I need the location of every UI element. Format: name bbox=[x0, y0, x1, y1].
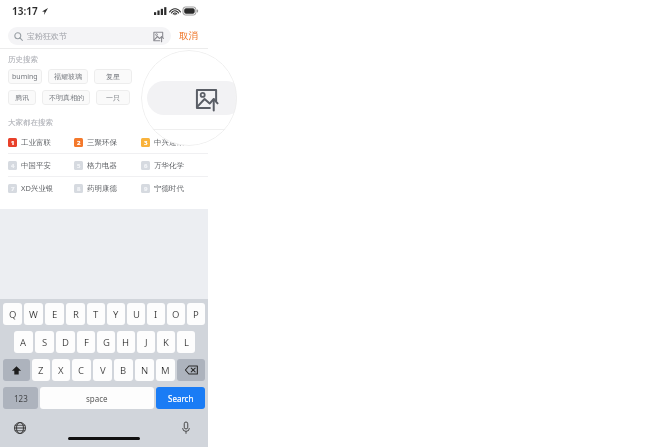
staticText: 9 bbox=[144, 185, 148, 193]
button[interactable]: 复星 bbox=[94, 69, 132, 84]
button[interactable]: W bbox=[24, 303, 43, 325]
staticText: V bbox=[100, 364, 106, 377]
staticText: 6 bbox=[144, 162, 148, 170]
staticText: 1 bbox=[11, 139, 15, 147]
staticText: 药明康德 bbox=[87, 184, 117, 193]
button[interactable]: Search bbox=[156, 387, 205, 409]
staticText: L bbox=[184, 336, 189, 349]
staticText: XD兴业银 bbox=[21, 183, 54, 193]
button[interactable]: L bbox=[177, 331, 195, 353]
button[interactable]: Backspace bbox=[177, 359, 205, 381]
staticText: M bbox=[161, 364, 170, 377]
button[interactable]: C bbox=[72, 359, 91, 381]
staticText: E bbox=[52, 308, 58, 321]
staticText: 8 bbox=[77, 185, 81, 193]
button[interactable]: Z bbox=[32, 359, 50, 381]
button[interactable]: 8 bbox=[74, 177, 141, 199]
staticText: 万华化学 bbox=[154, 161, 184, 170]
staticText: space bbox=[86, 393, 108, 404]
staticText: H bbox=[122, 336, 130, 349]
button[interactable]: G bbox=[97, 331, 115, 353]
button[interactable]: Q bbox=[3, 303, 22, 325]
button[interactable]: S bbox=[35, 331, 54, 353]
button[interactable]: U bbox=[127, 303, 145, 325]
staticText: 一只 bbox=[106, 93, 120, 102]
staticText: Search bbox=[168, 393, 194, 404]
button[interactable]: A bbox=[14, 331, 33, 353]
button[interactable]: 不明真相的 bbox=[42, 90, 90, 105]
staticText: J bbox=[145, 336, 148, 349]
staticText: B bbox=[120, 364, 127, 377]
staticText: 历史搜索 bbox=[8, 55, 38, 64]
button[interactable]: R bbox=[66, 303, 85, 325]
button[interactable]: 123 bbox=[3, 387, 38, 409]
staticText: Q bbox=[9, 308, 17, 321]
staticText: 福耀玻璃 bbox=[54, 72, 82, 81]
staticText: U bbox=[133, 308, 140, 321]
staticText: 5 bbox=[77, 162, 81, 170]
staticText: P bbox=[193, 308, 199, 321]
button[interactable]: O bbox=[167, 303, 185, 325]
button[interactable]: P bbox=[187, 303, 205, 325]
staticText: 大家都在搜索 bbox=[8, 118, 53, 127]
button[interactable]: 腾讯 bbox=[8, 90, 36, 105]
staticText: Y bbox=[113, 308, 119, 321]
button[interactable]: K bbox=[157, 331, 175, 353]
button[interactable]: F bbox=[77, 331, 95, 353]
staticText: I bbox=[154, 308, 158, 321]
button[interactable]: Y bbox=[107, 303, 125, 325]
staticText: W bbox=[29, 308, 38, 321]
button[interactable]: I bbox=[147, 303, 165, 325]
button[interactable]: Image search magnified bbox=[195, 87, 219, 111]
staticText: 格力电器 bbox=[87, 161, 117, 170]
button[interactable]: 6 bbox=[141, 154, 208, 176]
staticText: Z bbox=[38, 364, 44, 377]
staticText: R bbox=[73, 308, 79, 321]
staticText: T bbox=[93, 308, 99, 321]
button[interactable]: T bbox=[87, 303, 105, 325]
button[interactable]: Change keyboard bbox=[12, 420, 28, 436]
staticText: C bbox=[78, 364, 85, 377]
staticText: 3 bbox=[144, 139, 148, 147]
staticText: K bbox=[163, 336, 169, 349]
staticText: A bbox=[20, 336, 27, 349]
button[interactable]: E bbox=[45, 303, 64, 325]
button[interactable]: buming bbox=[8, 69, 42, 84]
button[interactable]: 福耀玻璃 bbox=[48, 69, 88, 84]
button[interactable]: X bbox=[52, 359, 70, 381]
button[interactable]: H bbox=[117, 331, 135, 353]
button[interactable]: 取消 bbox=[177, 28, 200, 44]
button[interactable]: B bbox=[114, 359, 133, 381]
staticText: 宁德时代 bbox=[154, 184, 184, 193]
staticText: 不明真相的 bbox=[49, 93, 84, 102]
button[interactable]: Image search bbox=[151, 29, 165, 43]
button[interactable]: N bbox=[135, 359, 154, 381]
button[interactable]: 宝粉狂欢节 bbox=[8, 27, 171, 45]
button[interactable]: 7 bbox=[8, 177, 74, 199]
staticText: G bbox=[103, 336, 110, 349]
staticText: 复星 bbox=[106, 72, 120, 81]
button[interactable]: D bbox=[56, 331, 75, 353]
staticText: 取消 bbox=[179, 30, 198, 42]
button[interactable]: 1 bbox=[8, 131, 74, 153]
button[interactable]: 2 bbox=[74, 131, 141, 153]
button[interactable]: space bbox=[40, 387, 154, 409]
staticText: 工业富联 bbox=[21, 138, 51, 147]
staticText: 三聚环保 bbox=[87, 138, 117, 147]
button[interactable]: J bbox=[137, 331, 155, 353]
button[interactable]: M bbox=[156, 359, 175, 381]
button[interactable]: 9 bbox=[141, 177, 208, 199]
button[interactable]: Shift bbox=[3, 359, 30, 381]
staticText: D bbox=[62, 336, 69, 349]
button[interactable]: 4 bbox=[8, 154, 74, 176]
button[interactable]: V bbox=[93, 359, 112, 381]
button[interactable]: 一只 bbox=[96, 90, 130, 105]
staticText: 2 bbox=[77, 139, 81, 147]
staticText: F bbox=[84, 336, 89, 349]
staticText: 13:17 bbox=[12, 4, 38, 18]
staticText: 123 bbox=[14, 393, 28, 404]
button[interactable]: 5 bbox=[74, 154, 141, 176]
staticText: X bbox=[58, 364, 64, 377]
button[interactable]: Voice input bbox=[178, 420, 194, 436]
button[interactable]: 3 bbox=[141, 131, 208, 153]
